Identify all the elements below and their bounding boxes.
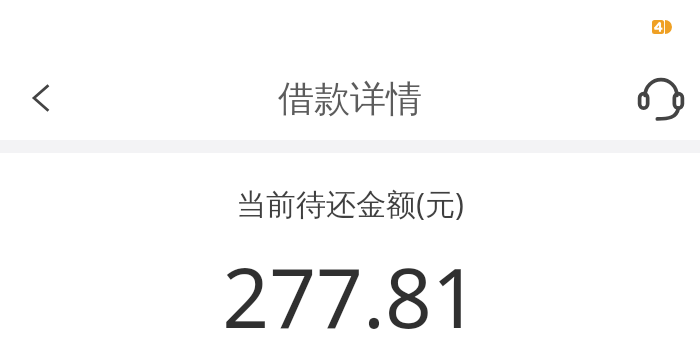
staticText: 借款详情 bbox=[278, 76, 422, 121]
button[interactable]: Customer service bbox=[630, 67, 692, 129]
staticText: 277.81 bbox=[222, 240, 479, 350]
staticText: 当前待还金额(元) bbox=[236, 183, 464, 224]
button[interactable]: Back bbox=[10, 67, 72, 129]
